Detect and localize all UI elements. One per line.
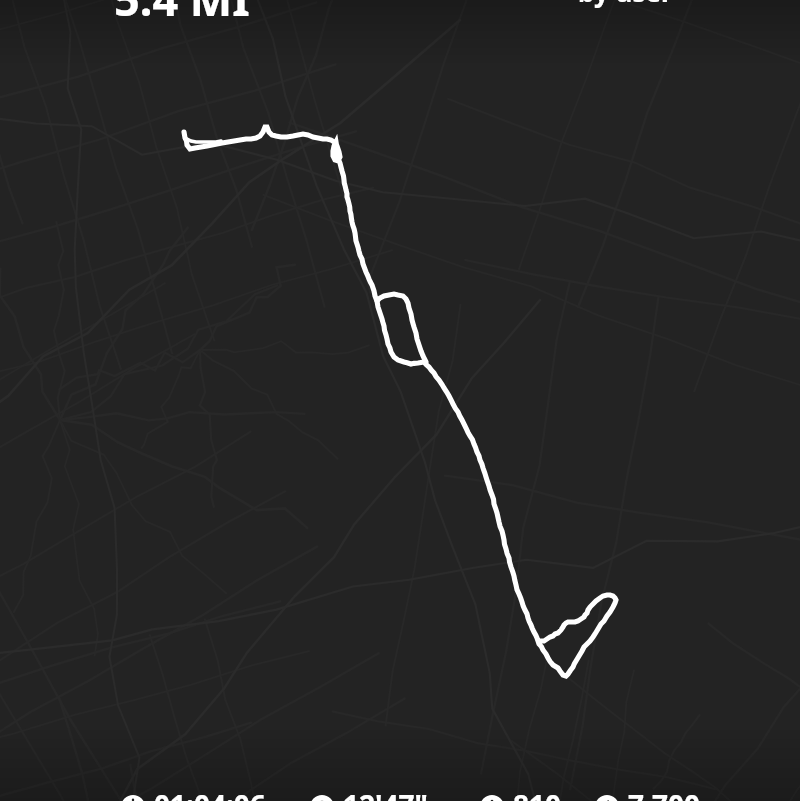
button[interactable]: 7,700 [595,786,701,801]
button[interactable]: Activity route map [0,0,800,801]
staticText: 12'47" [343,786,428,801]
staticText: 810 [513,786,562,801]
button[interactable]: 5.4 MI [114,0,250,29]
staticText: 5.4 MI [114,0,250,29]
staticText: by user [578,0,673,9]
staticText: 01:04:06 [154,786,266,801]
button[interactable]: 12'47" [310,786,428,801]
button[interactable]: by user [578,0,673,9]
button[interactable]: 810 [480,786,562,801]
staticText: 7,700 [628,786,701,801]
button[interactable]: 01:04:06 [121,786,266,801]
